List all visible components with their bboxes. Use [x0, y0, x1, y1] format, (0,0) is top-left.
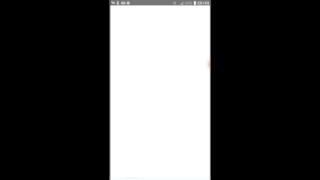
- button[interactable]: Accent control: [0, 0, 320, 180]
